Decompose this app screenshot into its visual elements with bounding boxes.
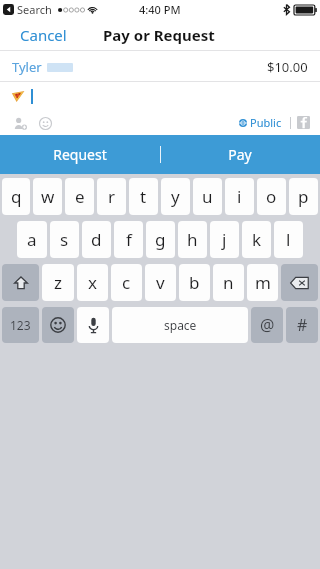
staticText: 123 bbox=[10, 317, 31, 333]
button[interactable]: Dictation bbox=[77, 307, 109, 343]
button[interactable]: i bbox=[225, 178, 254, 215]
staticText: q bbox=[11, 185, 22, 208]
staticText: @ bbox=[260, 314, 275, 336]
staticText: y bbox=[171, 185, 180, 208]
button[interactable]: d bbox=[82, 221, 111, 258]
button[interactable]: @ bbox=[251, 307, 283, 343]
staticText: a bbox=[27, 228, 37, 251]
button[interactable]: h bbox=[178, 221, 207, 258]
button[interactable]: w bbox=[33, 178, 62, 215]
button[interactable]: q bbox=[2, 178, 30, 215]
button[interactable]: Shift bbox=[2, 264, 39, 301]
staticText: f bbox=[126, 228, 132, 251]
staticText: $10.00 bbox=[267, 58, 308, 76]
staticText: h bbox=[187, 228, 198, 251]
staticText: l bbox=[286, 228, 291, 251]
staticText: g bbox=[155, 228, 166, 251]
staticText: p bbox=[298, 185, 309, 208]
button[interactable]: a bbox=[17, 221, 47, 258]
staticText: n bbox=[223, 271, 234, 294]
staticText: i bbox=[237, 185, 242, 208]
staticText: Search bbox=[17, 2, 52, 17]
button[interactable]: m bbox=[247, 264, 278, 301]
staticText: Tyler bbox=[12, 58, 42, 76]
staticText: Cancel bbox=[20, 25, 67, 45]
button[interactable]: f bbox=[114, 221, 143, 258]
staticText: r bbox=[108, 185, 116, 208]
staticText: Pay or Request bbox=[103, 25, 215, 45]
button[interactable]: u bbox=[193, 178, 222, 215]
button[interactable]: y bbox=[161, 178, 190, 215]
staticText: t bbox=[140, 185, 147, 208]
button[interactable]: Emoji keyboard bbox=[42, 307, 74, 343]
button[interactable]: o bbox=[257, 178, 286, 215]
staticText: z bbox=[54, 271, 62, 294]
button[interactable]: 123 bbox=[2, 307, 39, 343]
button[interactable]: Pay bbox=[160, 135, 320, 174]
button[interactable]: k bbox=[242, 221, 271, 258]
button[interactable]: b bbox=[179, 264, 210, 301]
button[interactable] bbox=[0, 82, 320, 110]
staticText: m bbox=[255, 271, 271, 294]
button[interactable]: l bbox=[274, 221, 303, 258]
staticText: 4:40 PM bbox=[139, 2, 181, 17]
button[interactable]: x bbox=[77, 264, 108, 301]
staticText: Pay bbox=[228, 145, 252, 164]
button[interactable]: v bbox=[145, 264, 176, 301]
staticText: # bbox=[297, 314, 308, 336]
button[interactable]: j bbox=[210, 221, 239, 258]
staticText: b bbox=[189, 271, 200, 294]
button[interactable]: z bbox=[42, 264, 74, 301]
staticText: k bbox=[252, 228, 262, 251]
button[interactable]: e bbox=[65, 178, 94, 215]
button[interactable]: r bbox=[97, 178, 126, 215]
staticText: space bbox=[164, 317, 197, 333]
staticText: Request bbox=[53, 145, 107, 164]
button[interactable]: Public bbox=[237, 112, 284, 133]
button[interactable]: c bbox=[111, 264, 142, 301]
staticText: d bbox=[91, 228, 102, 251]
button[interactable]: Share to Facebook bbox=[297, 116, 310, 129]
button[interactable]: g bbox=[146, 221, 175, 258]
button[interactable]: t bbox=[129, 178, 158, 215]
button[interactable]: space bbox=[112, 307, 248, 343]
button[interactable]: n bbox=[213, 264, 244, 301]
staticText: v bbox=[156, 271, 165, 294]
staticText: s bbox=[60, 228, 69, 251]
staticText: j bbox=[222, 228, 227, 251]
button[interactable]: Backspace bbox=[281, 264, 318, 301]
button[interactable]: Emoji bbox=[37, 115, 53, 131]
button[interactable]: Cancel bbox=[0, 19, 87, 51]
button[interactable]: p bbox=[289, 178, 318, 215]
staticText: o bbox=[266, 185, 277, 208]
button[interactable]: Tyler bbox=[0, 51, 320, 82]
staticText: c bbox=[122, 271, 131, 294]
staticText: e bbox=[75, 185, 85, 208]
staticText: x bbox=[88, 271, 97, 294]
staticText: u bbox=[202, 185, 213, 208]
staticText: Public bbox=[250, 115, 282, 130]
staticText: w bbox=[41, 185, 55, 208]
button[interactable]: # bbox=[286, 307, 318, 343]
button[interactable]: s bbox=[50, 221, 79, 258]
button[interactable]: Add person bbox=[12, 115, 28, 131]
button[interactable]: Request bbox=[0, 135, 160, 174]
